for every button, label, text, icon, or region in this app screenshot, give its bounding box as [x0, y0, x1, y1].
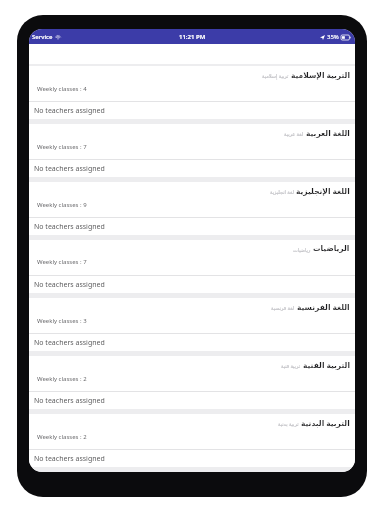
- button[interactable]: No teachers assigned: [29, 160, 355, 177]
- staticText: الرياضيات: [313, 244, 350, 253]
- button[interactable]: No teachers assigned: [29, 102, 355, 119]
- staticText: تربية بدنية: [278, 421, 299, 428]
- button[interactable]: لغة انجليزية: [29, 182, 355, 217]
- button[interactable]: لغة فرنسية: [29, 298, 355, 333]
- staticText: اللغة الفرنسية: [297, 302, 350, 312]
- staticText: No teachers assigned: [34, 106, 105, 116]
- staticText: Weekly classes : 7: [37, 258, 87, 266]
- staticText: No teachers assigned: [34, 396, 105, 406]
- staticText: No teachers assigned: [34, 454, 105, 464]
- staticText: اللغة الإنجليزية: [296, 186, 350, 196]
- staticText: No teachers assigned: [34, 164, 105, 174]
- button[interactable]: No teachers assigned: [29, 392, 355, 409]
- button[interactable]: No teachers assigned: [29, 276, 355, 293]
- staticText: تربية إسلامية: [262, 73, 289, 80]
- staticText: 35%: [327, 33, 339, 41]
- button[interactable]: No teachers assigned: [29, 334, 355, 351]
- staticText: Weekly classes : 7: [37, 143, 87, 151]
- staticText: No teachers assigned: [34, 338, 105, 348]
- staticText: Weekly classes : 4: [37, 85, 87, 93]
- other: Location: [320, 35, 325, 40]
- button[interactable]: لغة عربية: [29, 124, 355, 159]
- staticText: التربية البدنية: [301, 418, 350, 428]
- staticText: التربية الفنية: [303, 360, 350, 370]
- staticText: التربية الإسلامية: [291, 70, 350, 80]
- staticText: اللغة العربية: [306, 128, 350, 138]
- button[interactable]: تربية فنية: [29, 356, 355, 391]
- staticText: No teachers assigned: [34, 222, 105, 232]
- button[interactable]: تربية إسلامية: [29, 66, 355, 101]
- button[interactable]: No teachers assigned: [29, 450, 355, 467]
- staticText: لغة عربية: [284, 131, 304, 138]
- staticText: Weekly classes : 2: [37, 375, 87, 383]
- staticText: لغة انجليزية: [270, 189, 294, 196]
- other: Battery: [341, 35, 351, 40]
- staticText: No teachers assigned: [34, 280, 105, 290]
- staticText: 11:21 PM: [179, 33, 206, 41]
- staticText: تربية فنية: [281, 363, 301, 370]
- staticText: رياضيات: [293, 247, 311, 253]
- staticText: لغة فرنسية: [271, 305, 295, 312]
- staticText: Weekly classes : 3: [37, 317, 87, 325]
- button[interactable]: تربية بدنية: [29, 414, 355, 449]
- staticText: Weekly classes : 2: [37, 433, 87, 441]
- button[interactable]: No teachers assigned: [29, 218, 355, 235]
- staticText: Weekly classes : 9: [37, 201, 87, 209]
- other: Wi-Fi: [55, 34, 61, 40]
- button[interactable]: رياضيات: [29, 240, 355, 275]
- staticText: Service: [32, 33, 53, 41]
